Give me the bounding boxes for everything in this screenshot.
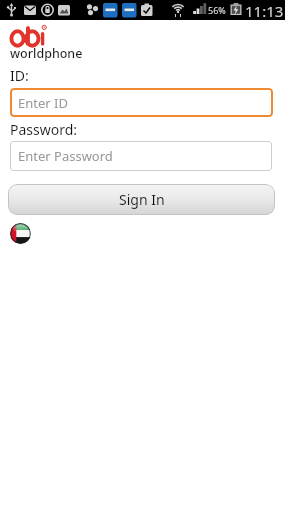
button[interactable]: Enter Password — [10, 141, 272, 171]
staticText: Enter ID — [18, 94, 68, 112]
staticText: Password: — [10, 120, 78, 139]
staticText: Sign In — [119, 190, 165, 209]
staticText: ID: — [10, 66, 29, 85]
staticText: worldphone — [10, 45, 83, 62]
button[interactable]: Sign In — [8, 184, 275, 215]
button[interactable]: Enter ID — [10, 88, 273, 117]
staticText: 11:13 — [245, 1, 284, 21]
button[interactable] — [10, 223, 31, 244]
staticText: 56% — [208, 4, 226, 16]
staticText: Enter Password — [18, 147, 113, 165]
